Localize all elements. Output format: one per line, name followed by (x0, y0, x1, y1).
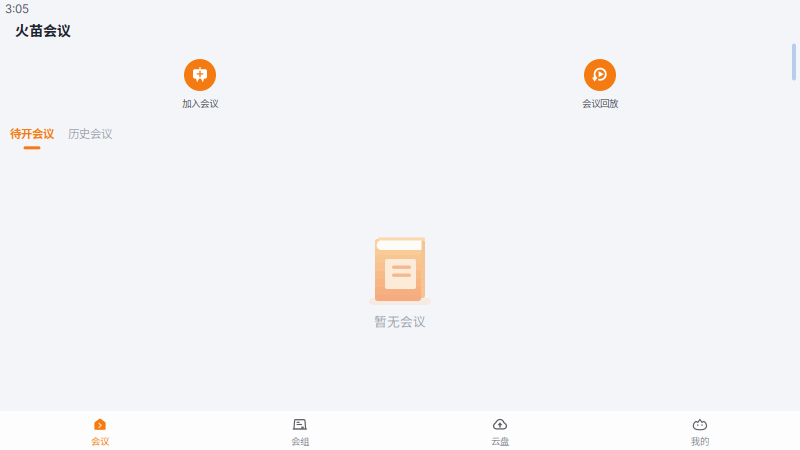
button[interactable]: 云盘 (400, 411, 600, 450)
staticText: 3:05 (5, 2, 29, 16)
staticText: 历史会议 (68, 125, 112, 141)
staticText: 火苗会议 (15, 20, 71, 40)
staticText: 我的 (691, 434, 709, 447)
staticText: 会议 (91, 434, 109, 447)
staticText: 会组 (291, 434, 309, 447)
staticText: 暂无会议 (374, 312, 426, 330)
button[interactable]: 我的 (600, 411, 800, 450)
button[interactable]: 历史会议 (68, 125, 112, 149)
button[interactable]: 会组 (200, 411, 400, 450)
staticText: 云盘 (491, 434, 509, 447)
staticText: 待开会议 (10, 125, 54, 141)
staticText: 会议回放 (582, 96, 618, 110)
button[interactable]: 会议 (0, 411, 200, 450)
button[interactable]: 会议回放 (540, 59, 660, 110)
button[interactable]: 待开会议 (10, 125, 54, 149)
button[interactable]: 加入会议 (140, 59, 260, 110)
staticText: 加入会议 (182, 96, 218, 110)
